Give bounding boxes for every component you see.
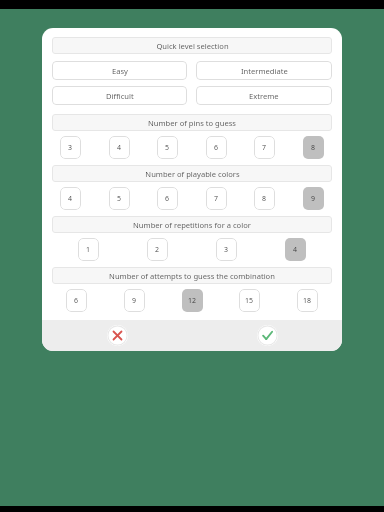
button[interactable]: Extreme [196,86,332,105]
staticText: 9 [132,296,137,306]
staticText: 3 [68,143,73,153]
button[interactable]: Difficult [52,86,187,105]
staticText: Number of attempts to guess the combinat… [109,271,275,281]
button[interactable]: 4 [109,136,130,159]
staticText: Number of pins to guess [148,118,236,128]
button[interactable]: Cancel [107,325,128,346]
button[interactable]: 9 [124,289,145,312]
button[interactable]: 2 [147,238,168,261]
button[interactable]: 3 [216,238,237,261]
button[interactable]: 1 [78,238,99,261]
staticText: 6 [214,143,219,153]
staticText: 7 [262,143,267,153]
staticText: 7 [214,194,219,204]
staticText: Quick level selection [156,41,229,51]
button[interactable]: 6 [206,136,227,159]
staticText: Easy [112,66,128,76]
button[interactable]: 18 [297,289,318,312]
staticText: 6 [74,296,79,306]
staticText: Difficult [106,91,134,101]
staticText: 8 [262,194,267,204]
staticText: 9 [311,194,316,204]
staticText: 18 [303,296,312,306]
staticText: 1 [86,245,91,255]
button[interactable]: 9 [303,187,324,210]
staticText: 15 [245,296,254,306]
button[interactable]: 4 [285,238,306,261]
button[interactable]: 15 [239,289,260,312]
staticText: 2 [155,245,160,255]
button[interactable]: 8 [254,187,275,210]
button[interactable]: Confirm [257,325,278,346]
button[interactable]: 5 [109,187,130,210]
staticText: 4 [117,143,122,153]
staticText: Extreme [249,91,279,101]
button[interactable]: 7 [254,136,275,159]
staticText: 5 [117,194,122,204]
staticText: Number of repetitions for a color [133,220,251,230]
staticText: 4 [293,245,298,255]
staticText: Intermediate [241,66,288,76]
staticText: Number of playable colors [145,169,240,179]
staticText: 6 [165,194,170,204]
button[interactable]: 8 [303,136,324,159]
button[interactable]: Easy [52,61,187,80]
staticText: 3 [224,245,229,255]
staticText: 8 [311,143,316,153]
button[interactable]: 6 [66,289,87,312]
button[interactable]: 5 [157,136,178,159]
staticText: 12 [188,296,197,306]
staticText: 4 [68,194,73,204]
button[interactable]: 4 [60,187,81,210]
button[interactable]: Intermediate [196,61,332,80]
button[interactable]: 7 [206,187,227,210]
staticText: 5 [165,143,170,153]
button[interactable]: 12 [182,289,203,312]
button[interactable]: 6 [157,187,178,210]
button[interactable]: 3 [60,136,81,159]
